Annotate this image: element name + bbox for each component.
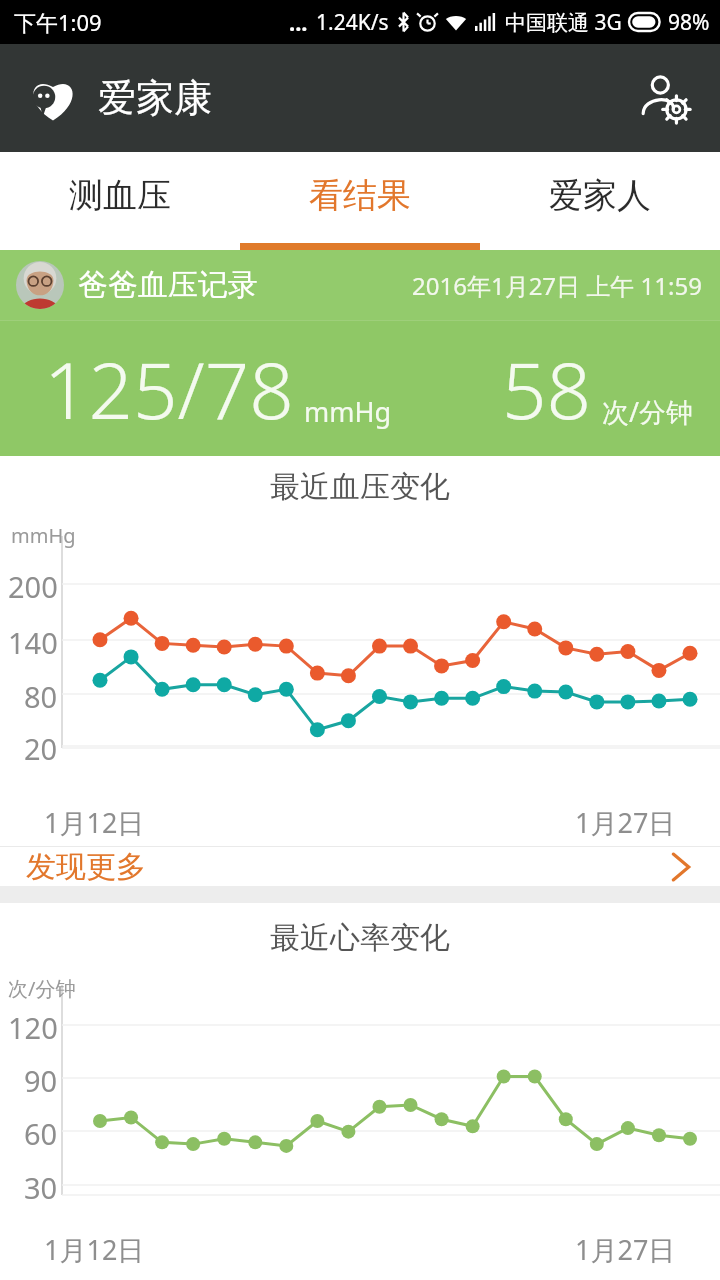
staticText: 最近心率变化	[270, 919, 450, 957]
staticText: mmHg	[304, 393, 392, 430]
staticText: 30	[24, 1168, 58, 1207]
staticText: 20	[24, 729, 58, 768]
staticText: 1月27日	[575, 804, 676, 841]
staticText: 200	[8, 567, 58, 606]
staticText: 120	[8, 1008, 58, 1047]
staticText: 1月12日	[44, 804, 145, 841]
staticText: 125/78	[44, 336, 294, 442]
staticText: 次/分钟	[8, 975, 76, 1002]
staticText: 爱家人	[549, 174, 651, 217]
staticText: 1月27日	[575, 1231, 676, 1268]
button[interactable]: 看结果	[240, 152, 480, 250]
staticText: ...	[289, 7, 308, 37]
staticText: 次/分钟	[602, 393, 694, 430]
staticText: 测血压	[69, 174, 171, 217]
button[interactable]: 发现更多	[0, 847, 720, 886]
staticText: 最近血压变化	[270, 468, 450, 506]
button[interactable]: 爱家人	[480, 152, 720, 250]
staticText: mmHg	[11, 522, 76, 549]
staticText: 中国联通 3G	[505, 8, 622, 37]
staticText: 90	[24, 1061, 58, 1100]
button[interactable]: Account settings	[634, 67, 696, 129]
staticText: 下午1:09	[14, 7, 102, 37]
button[interactable]: 爸爸血压记录	[0, 250, 720, 456]
staticText: 80	[24, 677, 58, 716]
staticText: 58	[502, 336, 592, 442]
staticText: 98%	[668, 8, 710, 37]
staticText: 2016年1月27日 上午 11:59	[412, 269, 702, 302]
button[interactable]: 测血压	[0, 152, 240, 250]
staticText: 1.24K/s	[316, 8, 389, 37]
staticText: 爱家康	[98, 74, 212, 122]
staticText: 发现更多	[26, 848, 146, 886]
staticText: 看结果	[309, 174, 411, 217]
staticText: 爸爸血压记录	[78, 266, 258, 304]
staticText: 60	[24, 1114, 58, 1153]
staticText: 1月12日	[44, 1231, 145, 1268]
staticText: 140	[8, 623, 58, 662]
